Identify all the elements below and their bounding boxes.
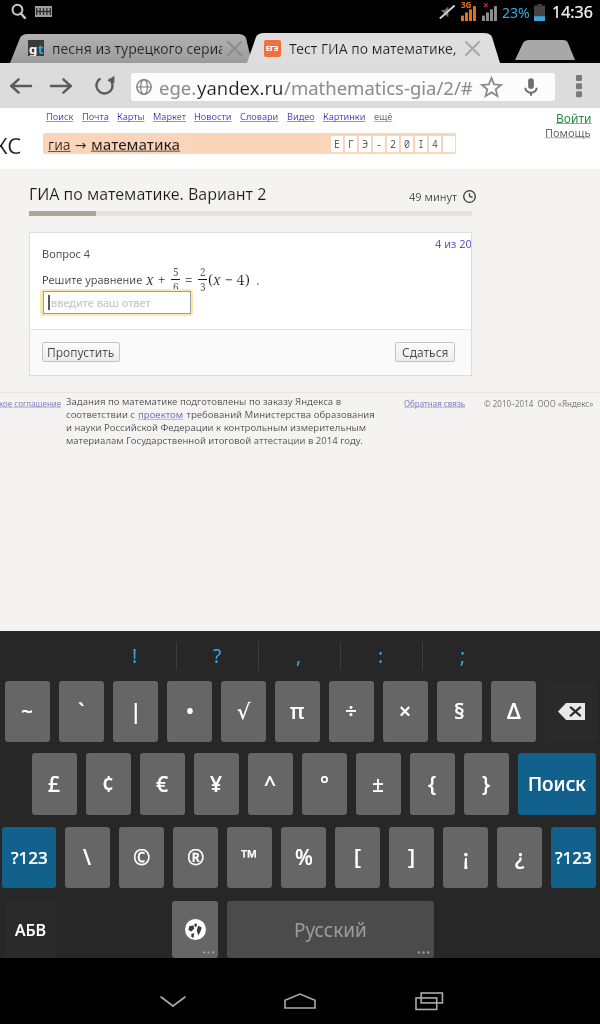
button[interactable]: π	[275, 681, 320, 742]
button[interactable]: ©	[119, 827, 164, 888]
button[interactable]: Change keyboard	[172, 901, 218, 958]
button[interactable]: математика	[91, 134, 181, 154]
button[interactable]: √	[221, 681, 266, 742]
staticText: |	[130, 697, 142, 726]
staticText: Э	[362, 137, 368, 151]
staticText: =	[181, 270, 197, 289]
button[interactable]: гиа	[48, 135, 71, 154]
button[interactable]: Δ	[491, 681, 536, 742]
button[interactable]: °	[302, 753, 347, 815]
button[interactable]: }	[464, 753, 509, 815]
button[interactable]: |	[113, 681, 158, 742]
button[interactable]: ;	[422, 631, 504, 681]
button[interactable]: •	[167, 681, 212, 742]
button[interactable]: ?123	[2, 827, 56, 888]
button[interactable]: Русский	[227, 901, 434, 958]
staticText: песня из турецкого сериа	[52, 39, 222, 58]
button[interactable]: Recent apps	[399, 981, 459, 1021]
staticText: ]	[408, 843, 415, 872]
button[interactable]: ]	[389, 827, 434, 888]
button[interactable]: ¢	[86, 753, 131, 815]
button[interactable]: ¿	[497, 827, 542, 888]
staticText: 49 минут	[409, 189, 458, 204]
button[interactable]: Новости	[194, 110, 232, 123]
button[interactable]: ¥	[194, 753, 239, 815]
button[interactable]: кое соглашение	[0, 398, 62, 409]
button[interactable]: !	[94, 631, 176, 681]
button[interactable]: ещё	[374, 110, 393, 123]
button[interactable]: Backspace	[545, 681, 597, 742]
button[interactable]: New tab	[515, 33, 575, 63]
button[interactable]: `	[59, 681, 104, 742]
button[interactable]: ¡	[443, 827, 488, 888]
staticText: 14:36	[552, 1, 593, 23]
staticText: АБВ	[15, 919, 46, 941]
button[interactable]: АБВ	[5, 901, 56, 958]
staticText: √	[237, 700, 251, 724]
button[interactable]: ,	[258, 631, 340, 681]
button[interactable]: Back	[143, 981, 203, 1021]
staticText: €	[156, 770, 169, 799]
button[interactable]: Маркет	[153, 110, 186, 123]
button[interactable]: €	[140, 753, 185, 815]
button[interactable]: ЕГЭ	[264, 33, 460, 63]
button[interactable]: Видео	[287, 110, 315, 123]
button[interactable]: More options	[562, 63, 596, 108]
staticText: (	[208, 270, 213, 289]
button[interactable]: Обратная связь	[404, 398, 466, 409]
button[interactable]: Войти	[556, 110, 592, 126]
button[interactable]: Home	[270, 981, 330, 1021]
button[interactable]: Forward	[44, 63, 78, 108]
staticText: Тест ГИА по математике,	[289, 39, 457, 58]
button[interactable]: Поиск	[46, 110, 74, 123]
staticText: ¢	[102, 770, 115, 799]
button[interactable]: Bookmark	[474, 73, 508, 101]
button[interactable]: ege.	[131, 73, 555, 101]
button[interactable]: Voice search	[514, 73, 548, 101]
button[interactable]: {	[410, 753, 455, 815]
staticText: 6	[173, 280, 179, 294]
staticText: Δ	[507, 697, 521, 726]
button[interactable]: Картинки	[323, 110, 366, 123]
staticText: материалам Государственной итоговой атте…	[66, 434, 363, 447]
staticText: ×	[483, 0, 489, 12]
button[interactable]: ®	[173, 827, 218, 888]
button[interactable]: \	[65, 827, 110, 888]
button[interactable]: Карты	[117, 110, 145, 123]
staticText: ¥	[210, 770, 223, 799]
button[interactable]: £	[32, 753, 77, 815]
button[interactable]: введите ваш ответ	[40, 289, 193, 316]
button[interactable]: Reload	[87, 63, 121, 108]
button[interactable]: Close tab	[222, 33, 246, 63]
button[interactable]: Помощь	[545, 125, 591, 140]
button[interactable]: ~	[5, 681, 50, 742]
button[interactable]: ^	[248, 753, 293, 815]
button[interactable]: Сдаться	[395, 342, 455, 362]
button[interactable]: Поиск	[518, 753, 596, 815]
button[interactable]: Back	[4, 63, 38, 108]
button[interactable]: :	[340, 631, 422, 681]
button[interactable]: §	[437, 681, 482, 742]
button[interactable]: ?123	[551, 827, 596, 888]
button[interactable]: ™	[227, 827, 272, 888]
staticText: ?123	[11, 846, 48, 869]
button[interactable]: ×	[383, 681, 428, 742]
staticText: © 2010–2014 ООО «Яндекс»	[484, 398, 594, 409]
button[interactable]: ±	[356, 753, 401, 815]
staticText: 2	[200, 265, 206, 279]
staticText: ¡	[463, 843, 469, 872]
staticText: §	[454, 697, 465, 726]
staticText: →	[71, 135, 91, 154]
button[interactable]: g	[28, 33, 222, 63]
button[interactable]: %	[281, 827, 326, 888]
button[interactable]: Словари	[240, 110, 279, 123]
button[interactable]: ÷	[329, 681, 374, 742]
button[interactable]: проектом	[138, 408, 184, 421]
button[interactable]: Почта	[82, 110, 109, 123]
staticText: ;	[460, 643, 466, 669]
button[interactable]: [	[335, 827, 380, 888]
button[interactable]: Пропустить	[42, 342, 120, 362]
button[interactable]: Close tab	[460, 33, 484, 63]
button[interactable]: ?	[176, 631, 258, 681]
staticText: КС	[0, 130, 22, 160]
